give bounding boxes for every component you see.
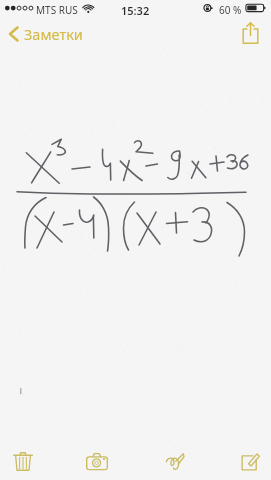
button[interactable]: Delete xyxy=(0,440,46,480)
button[interactable]: Share xyxy=(236,18,265,48)
staticText: 60 % xyxy=(219,3,242,17)
staticText: Заметки xyxy=(24,24,83,44)
button[interactable]: Markup xyxy=(152,440,198,480)
staticText: 15:32 xyxy=(121,3,150,18)
staticText: MTS RUS xyxy=(36,3,78,17)
button[interactable]: Camera xyxy=(74,440,120,480)
button[interactable]: Заметки xyxy=(4,22,91,46)
button[interactable]: Compose xyxy=(227,440,271,480)
